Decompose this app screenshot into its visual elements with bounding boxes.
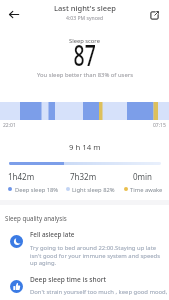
staticText: You sleep better than 83% of users: [37, 71, 133, 79]
staticText: isn't good for your immune system and sp…: [30, 252, 160, 260]
staticText: up aging.: [30, 259, 57, 267]
button[interactable]: Deep sleep time is short: [0, 270, 169, 300]
staticText: Light sleep 82%: [72, 186, 115, 194]
button[interactable]: [4, 4, 24, 24]
staticText: 07:15: [153, 122, 166, 129]
staticText: 22:01: [3, 122, 16, 129]
staticText: Deep sleep time is short: [30, 275, 106, 284]
staticText: Sleep score: [69, 37, 100, 45]
staticText: 1h42m: [8, 171, 35, 182]
button[interactable]: [144, 5, 164, 25]
staticText: 0min: [133, 171, 153, 182]
staticText: Time awake: [130, 186, 163, 194]
staticText: 4:03 PM synced: [66, 15, 104, 22]
staticText: Try going to bed around 22:00.Staying up…: [30, 244, 157, 252]
staticText: Last night's sleep: [54, 3, 116, 13]
staticText: Don't strain yourself too much , keep go…: [30, 288, 168, 296]
staticText: 7h32m: [70, 171, 97, 182]
button[interactable]: Fell asleep late: [0, 228, 169, 269]
staticText: 87: [74, 35, 96, 74]
staticText: Deep sleep 18%: [15, 186, 59, 194]
staticText: 9 h 14 m: [69, 142, 101, 153]
staticText: Fell asleep late: [30, 230, 75, 239]
staticText: Sleep quality analysis: [5, 214, 67, 222]
